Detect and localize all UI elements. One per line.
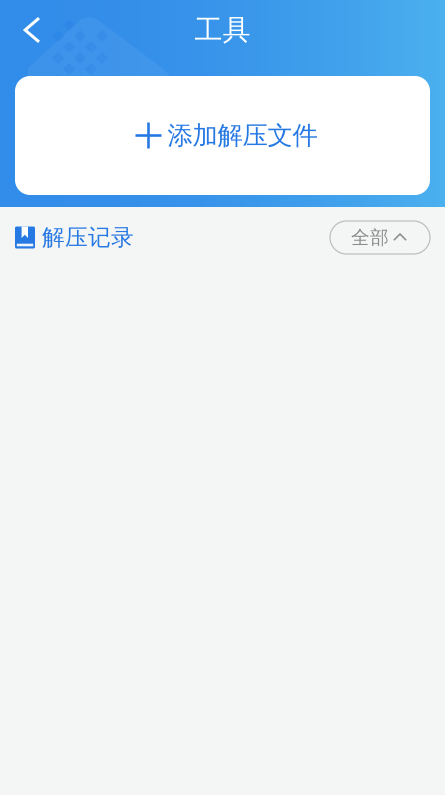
staticText: 解压记录	[42, 224, 134, 251]
staticText: 全部	[351, 226, 389, 249]
staticText: 添加解压文件	[167, 120, 317, 151]
button[interactable]: 全部	[330, 221, 430, 254]
staticText: 工具	[194, 13, 250, 47]
button[interactable]: 添加解压文件	[15, 76, 430, 195]
button[interactable]: Back	[9, 7, 55, 53]
